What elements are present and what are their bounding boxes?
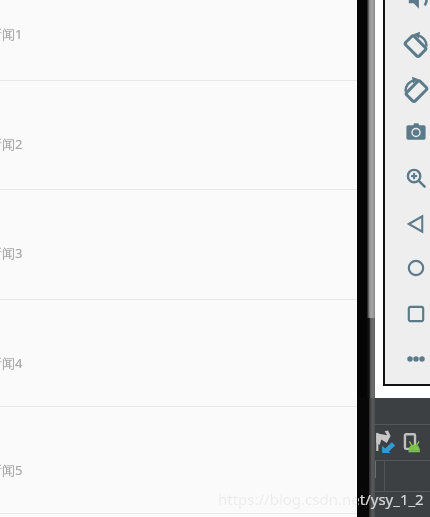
button[interactable]: 新闻5 (0, 407, 357, 513)
button[interactable]: 新闻4 (0, 300, 357, 406)
button[interactable]: Home (404, 256, 428, 280)
button[interactable]: Overview (404, 302, 428, 326)
button[interactable]: 新闻3 (0, 190, 357, 299)
button[interactable]: Volume up (404, 0, 428, 12)
staticText: 新闻2 (0, 135, 23, 153)
button[interactable]: Back (404, 212, 428, 236)
button[interactable]: Attach debugger (375, 430, 396, 451)
staticText: 新闻1 (0, 25, 23, 43)
staticText: 新闻3 (0, 244, 23, 262)
button[interactable]: Rotate right (404, 77, 428, 101)
button[interactable]: More (404, 347, 428, 371)
staticText: https://blog.csdn.net/ysy_1_2 (358, 489, 424, 509)
staticText: 新闻5 (0, 461, 23, 479)
button[interactable]: Zoom (404, 166, 428, 190)
button[interactable]: 新闻1 (0, 0, 357, 80)
button[interactable]: 新闻2 (0, 81, 357, 189)
staticText: https://blog.csdn.net/ysy_1_2 (218, 489, 424, 509)
staticText: 新闻4 (0, 354, 23, 372)
button[interactable]: Rotate left (404, 32, 428, 56)
button[interactable]: Take screenshot (404, 120, 428, 144)
button[interactable]: Logcat (402, 430, 423, 451)
